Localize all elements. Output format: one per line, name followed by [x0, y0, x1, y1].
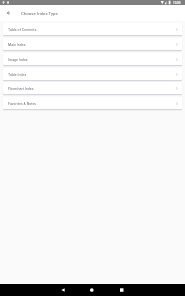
button[interactable]: Table Index: [3, 68, 182, 80]
button[interactable]: Table of Contents...: [3, 23, 182, 35]
staticText: Table Index: [8, 73, 27, 77]
button[interactable]: Navigate up: [0, 5, 16, 21]
staticText: Favorites & Notes: [8, 102, 37, 106]
staticText: Image Index: [8, 58, 28, 62]
staticText: Table of Contents...: [8, 28, 40, 32]
staticText: Main Index: [8, 43, 26, 47]
staticText: Flowchart Index: [8, 87, 34, 91]
staticText: Choose Index Type: [21, 11, 58, 16]
button[interactable]: Flowchart Index: [3, 82, 182, 94]
staticText: 13:00: [173, 1, 181, 5]
button[interactable]: Favorites & Notes: [3, 97, 182, 109]
button[interactable]: Image Index: [3, 53, 182, 65]
button[interactable]: Main Index: [3, 38, 182, 50]
